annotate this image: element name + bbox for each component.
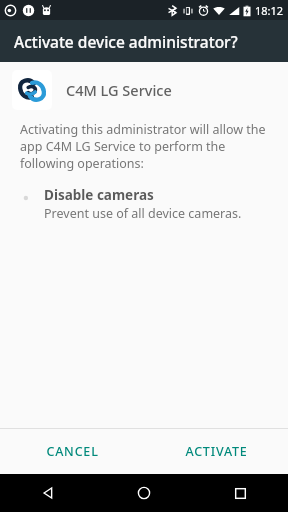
button[interactable]: CANCEL	[0, 429, 144, 474]
staticText: Disable cameras	[44, 186, 154, 204]
staticText: Prevent use of all device cameras.	[44, 205, 242, 222]
staticText: Activating this administrator will allow…	[20, 121, 266, 172]
staticText: CANCEL	[46, 443, 99, 460]
staticText: ACTIVATE	[185, 443, 248, 460]
staticText: 18:12	[255, 3, 284, 18]
button[interactable]: Recent apps	[192, 474, 288, 512]
staticText: C4M LG Service	[66, 80, 172, 100]
staticText: Activate device administrator?	[14, 31, 238, 52]
button[interactable]: Home	[96, 474, 192, 512]
button[interactable]: Back	[0, 474, 96, 512]
button[interactable]: Disable cameras	[0, 184, 288, 224]
button[interactable]: ACTIVATE	[144, 429, 288, 474]
